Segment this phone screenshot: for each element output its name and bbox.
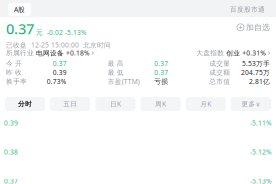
staticText: 大盘指数 xyxy=(196,49,226,57)
button[interactable]: 更多∨ xyxy=(231,97,271,111)
staticText: -5.13% xyxy=(250,177,272,184)
staticText: A股 xyxy=(14,5,25,14)
staticText: -5.11% xyxy=(250,119,272,127)
staticText: 0.39 xyxy=(4,119,18,127)
staticText: 0.38 xyxy=(4,148,18,156)
button[interactable]: A股 xyxy=(8,3,31,16)
staticText: 月K xyxy=(200,100,211,108)
staticText: 0.37 xyxy=(53,59,67,68)
staticText: 分时 xyxy=(18,100,32,108)
staticText: 0.37 xyxy=(154,59,168,68)
staticText: 0.37 xyxy=(4,177,18,184)
staticText: 所属行业 xyxy=(6,49,36,57)
staticText: 204.75万 xyxy=(241,68,270,77)
button[interactable]: 周K xyxy=(140,97,181,111)
staticText: 0.37 xyxy=(6,19,34,38)
staticText: 市盈(TTM) xyxy=(108,77,140,86)
staticText: -5.12% xyxy=(250,148,272,156)
staticText: 最 低 xyxy=(108,68,124,77)
staticText: 更多∨ xyxy=(241,100,260,108)
staticText: 加自选 xyxy=(246,22,270,32)
staticText: 2.81亿 xyxy=(249,77,270,86)
staticText: 日K xyxy=(110,100,121,108)
staticText: 成交量 xyxy=(209,59,230,68)
staticText: 0.39 xyxy=(53,68,67,77)
staticText: 创业 +0.31% xyxy=(226,49,266,57)
button[interactable]: 日K xyxy=(95,97,135,111)
staticText: 元 xyxy=(34,28,43,37)
staticText: 昨 收 xyxy=(6,68,22,77)
button[interactable]: 加自选 xyxy=(237,22,270,38)
staticText: 最 高 xyxy=(108,59,124,68)
staticText: 0.37 xyxy=(154,68,168,77)
staticText: 0.73% xyxy=(47,77,67,86)
staticText: 今 开 xyxy=(6,59,22,68)
button[interactable]: 分时 xyxy=(5,97,45,111)
button[interactable]: 五日 xyxy=(50,97,90,111)
staticText: 总市值 xyxy=(209,77,230,86)
button[interactable]: 月K xyxy=(186,97,226,111)
staticText: 五日 xyxy=(63,100,77,108)
staticText: 换手率 xyxy=(6,77,27,86)
staticText: -0.02 -5.13% xyxy=(43,28,87,37)
staticText: 亏损 xyxy=(154,77,168,86)
staticText: 电网设备 +0.18% xyxy=(36,49,90,57)
staticText: 周K xyxy=(155,100,166,108)
staticText: 百度股市通 xyxy=(230,5,265,14)
staticText: 已收盘 12-25 15:00:00 北京时间 xyxy=(6,41,111,49)
staticText: 5.53万手 xyxy=(242,59,270,68)
staticText: 成交额 xyxy=(209,68,230,77)
